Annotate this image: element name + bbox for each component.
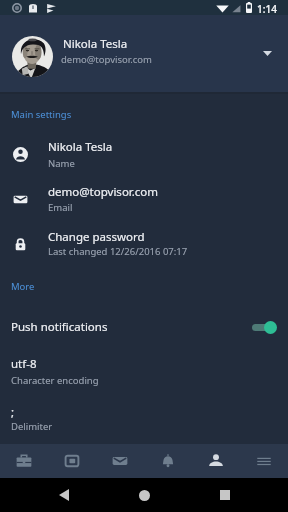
- staticText: More: [11, 280, 35, 293]
- staticText: demo@topvisor.com: [48, 184, 159, 200]
- staticText: 1:14: [257, 2, 277, 16]
- button[interactable]: Mail: [96, 444, 144, 478]
- button[interactable]: Account: [192, 444, 240, 478]
- button[interactable]: Home: [127, 478, 161, 512]
- staticText: Change password: [48, 229, 145, 245]
- staticText: Push notifications: [11, 319, 108, 335]
- button[interactable]: Projects: [0, 444, 48, 478]
- button[interactable]: Push notifications: [0, 311, 288, 343]
- button[interactable]: Cards: [48, 444, 96, 478]
- staticText: Last changed 12/26/2016 07:17: [48, 245, 188, 258]
- button[interactable]: ;: [0, 396, 288, 436]
- button[interactable]: Nikola Tesla: [0, 131, 288, 176]
- button[interactable]: Menu: [240, 444, 288, 478]
- staticText: utf-8: [11, 356, 37, 372]
- staticText: Delimiter: [11, 420, 53, 433]
- staticText: demo@topvisor.com: [61, 53, 152, 66]
- staticText: Email: [48, 201, 73, 214]
- button[interactable]: Nikola Tesla: [0, 15, 288, 92]
- staticText: ;: [11, 404, 15, 420]
- button[interactable]: utf-8: [0, 348, 288, 388]
- staticText: Main settings: [11, 108, 72, 121]
- staticText: Nikola Tesla: [63, 36, 128, 52]
- button[interactable]: Switch account: [256, 42, 278, 64]
- button[interactable]: Recent apps: [208, 478, 242, 512]
- button[interactable]: Notifications: [144, 444, 192, 478]
- staticText: Nikola Tesla: [48, 139, 113, 155]
- staticText: Character encoding: [11, 374, 99, 387]
- button[interactable]: Push notifications switch: [248, 315, 281, 339]
- button[interactable]: Back: [47, 478, 81, 512]
- staticText: Name: [48, 157, 75, 170]
- button[interactable]: Change password: [0, 221, 288, 266]
- button[interactable]: demo@topvisor.com: [0, 176, 288, 221]
